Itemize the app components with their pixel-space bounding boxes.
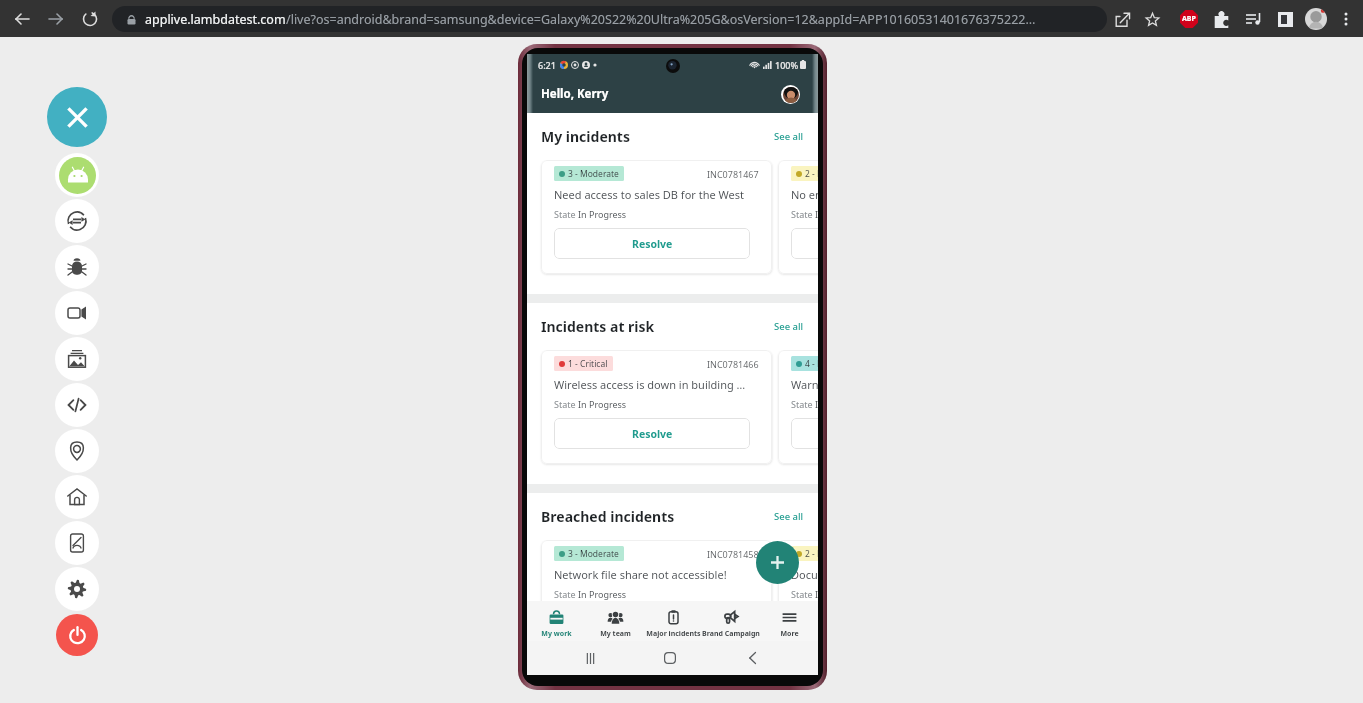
staticText: applive.lambdatest.com (145, 11, 286, 28)
staticText: INC0781458 (707, 548, 759, 560)
staticText: See all (774, 510, 804, 523)
staticText: State (791, 208, 815, 220)
button[interactable]: Bug (55, 245, 99, 289)
staticText: 4 - Low (805, 358, 818, 370)
button[interactable]: 2 - High (778, 160, 818, 274)
staticText: In Progress (815, 208, 818, 220)
staticText: ABP (1182, 14, 1196, 24)
button[interactable]: Profile (781, 85, 800, 104)
button[interactable]: Device (55, 521, 99, 565)
staticText: INC0781467 (707, 168, 759, 180)
button[interactable]: applive.lambdatest.com (112, 6, 1107, 32)
staticText: See all (774, 130, 804, 143)
button[interactable]: My team (586, 601, 644, 641)
button[interactable]: Back (8, 5, 36, 33)
staticText: In Progress (578, 588, 627, 600)
staticText: Major incidents (646, 629, 701, 639)
button[interactable]: Forward (42, 5, 70, 33)
button[interactable]: See all (774, 320, 804, 333)
button[interactable]: Screenshot (55, 337, 99, 381)
button[interactable]: Add (756, 541, 799, 584)
button[interactable]: See all (774, 510, 804, 523)
staticText: Resolve (632, 237, 673, 251)
button[interactable]: Settings (55, 567, 99, 611)
staticText: No email access on my laptop (791, 187, 818, 202)
staticText: Need access to sales DB for the West (554, 187, 744, 202)
button[interactable]: Major incidents (644, 601, 702, 641)
staticText: INC0781466 (707, 358, 759, 370)
staticText: Warning: SSL expiring soon (791, 377, 818, 392)
button[interactable]: AdBlock Plus (1177, 7, 1201, 31)
staticText: See all (774, 320, 804, 333)
staticText: State (554, 398, 578, 410)
staticText: State (554, 208, 578, 220)
button[interactable]: Rotate (55, 199, 99, 243)
button[interactable]: Code (55, 383, 99, 427)
staticText: My incidents (541, 127, 630, 146)
staticText: My team (600, 629, 631, 639)
staticText: 6:21 (538, 59, 556, 71)
staticText: State (791, 398, 815, 410)
staticText: In Progress (578, 208, 627, 220)
staticText: Breached incidents (541, 507, 675, 526)
button[interactable]: 2 - High (778, 540, 818, 601)
staticText: Document sharing is slow (791, 567, 818, 582)
staticText: In Progress (815, 398, 818, 410)
button[interactable]: Android (55, 153, 99, 197)
staticText: Hello, Kerry (541, 86, 609, 102)
staticText: /live?os=android&brand=samsung&device=Ga… (286, 11, 1036, 28)
staticText: 1 - Critical (568, 358, 608, 370)
staticText: Network file share not accessible! (554, 567, 727, 582)
staticText: State (554, 588, 578, 600)
button[interactable]: More (760, 601, 818, 641)
staticText: 3 - Moderate (568, 168, 619, 180)
button[interactable]: Resolve (554, 418, 750, 449)
button[interactable]: Profile (1305, 8, 1327, 30)
button[interactable]: 4 - Low (778, 350, 818, 464)
button[interactable]: Resolve (554, 228, 750, 259)
button[interactable]: 1 - Critical (541, 350, 772, 464)
button[interactable]: Recents (576, 641, 604, 675)
staticText: My work (541, 629, 572, 639)
staticText: In Progress (578, 398, 627, 410)
button[interactable]: More options (1335, 8, 1357, 30)
staticText: Wireless access is down in building … (554, 377, 746, 392)
button[interactable]: Share (1107, 4, 1137, 34)
staticText: State (791, 588, 815, 600)
button[interactable]: Reload (76, 5, 104, 33)
staticText: Resolve (632, 427, 673, 441)
button[interactable]: My work (527, 601, 586, 641)
staticText: 100% (775, 59, 799, 71)
staticText: 2 - High (805, 168, 818, 180)
button[interactable]: Power (56, 614, 98, 656)
button[interactable]: 3 - Moderate (541, 160, 772, 274)
button[interactable]: Brand Campaign (702, 601, 760, 641)
staticText: Brand Campaign (702, 629, 760, 639)
button[interactable]: Media (1241, 7, 1265, 31)
button[interactable]: See all (774, 130, 804, 143)
button[interactable]: Bookmark (1137, 4, 1167, 34)
staticText: Incidents at risk (541, 317, 655, 336)
button[interactable]: Close (47, 87, 107, 147)
button[interactable]: Resolve (791, 228, 818, 259)
button[interactable]: Record (55, 291, 99, 335)
button[interactable]: Home (656, 641, 684, 675)
staticText: 3 - Moderate (568, 548, 619, 560)
button[interactable]: Home (55, 475, 99, 519)
button[interactable]: Extensions (1209, 7, 1233, 31)
button[interactable]: Side panel (1273, 7, 1297, 31)
button[interactable]: 3 - Moderate (541, 540, 772, 601)
button[interactable]: Location (55, 429, 99, 473)
staticText: More (780, 629, 799, 639)
button[interactable]: Back (738, 641, 766, 675)
staticText: 2 - High (805, 548, 818, 560)
button[interactable]: Resolve (791, 418, 818, 449)
staticText: In Progress (815, 588, 818, 600)
